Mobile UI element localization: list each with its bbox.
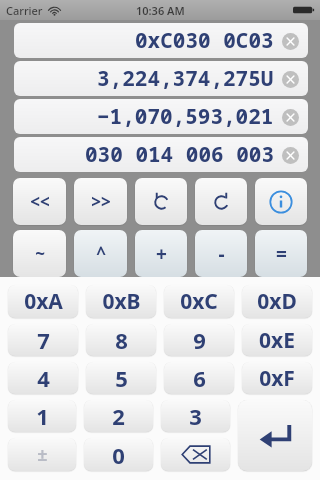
staticText: ± (37, 442, 48, 467)
button[interactable]: = (255, 230, 307, 277)
button[interactable]: Clear field (278, 67, 302, 91)
staticText: + (156, 241, 167, 267)
staticText: 0xE (259, 326, 295, 355)
button[interactable]: 9 (164, 324, 234, 356)
staticText: 7 (37, 325, 50, 355)
button[interactable]: 5 (86, 362, 156, 394)
button[interactable]: 0 (84, 438, 153, 471)
button[interactable]: 3,224,374,275U (14, 61, 308, 96)
button[interactable]: ± (8, 438, 76, 471)
staticText: << (30, 190, 50, 213)
button[interactable]: Backspace (161, 438, 230, 471)
staticText: 3,224,374,275U (97, 64, 274, 93)
staticText: >> (91, 190, 111, 213)
button[interactable]: 0xD (242, 285, 312, 318)
button[interactable]: ^ (74, 230, 127, 277)
staticText: - (218, 241, 225, 267)
button[interactable]: 0xC (164, 285, 234, 318)
staticText: 2 (112, 401, 125, 431)
button[interactable]: 6 (164, 362, 234, 394)
button[interactable]: >> (74, 178, 127, 225)
button[interactable]: 2 (84, 400, 153, 432)
staticText: = (276, 241, 287, 267)
staticText: 0xC (180, 287, 218, 316)
staticText: 9 (193, 325, 206, 355)
button[interactable]: Undo (135, 178, 187, 225)
staticText: 6 (193, 363, 206, 393)
staticText: 1 (36, 401, 49, 431)
button[interactable]: 8 (86, 324, 156, 356)
staticText: 8 (115, 325, 128, 355)
staticText: 0xC030 0C03 (135, 26, 274, 55)
staticText: ^ (96, 242, 106, 265)
staticText: ~ (35, 242, 45, 265)
button[interactable]: 0xE (242, 324, 312, 356)
staticText: 5 (115, 363, 128, 393)
button[interactable]: Clear field (278, 105, 302, 129)
button[interactable]: Clear field (278, 143, 302, 167)
button[interactable]: ~ (13, 230, 66, 277)
staticText: 0xB (102, 287, 141, 316)
button[interactable]: 0xC030 0C03 (14, 23, 308, 58)
button[interactable]: + (135, 230, 187, 277)
button[interactable]: Enter (238, 400, 312, 471)
button[interactable]: 3 (161, 400, 230, 432)
staticText: 030 014 006 003 (85, 140, 274, 169)
button[interactable]: 0xF (242, 362, 312, 394)
button[interactable]: << (13, 178, 66, 225)
button[interactable]: 030 014 006 003 (14, 137, 308, 172)
button[interactable]: 0xB (86, 285, 156, 318)
staticText: 3 (189, 401, 202, 431)
staticText: 0xD (257, 287, 297, 316)
staticText: 4 (37, 363, 50, 393)
button[interactable]: Clear field (278, 29, 302, 53)
staticText: −1,070,593,021 (97, 102, 274, 131)
button[interactable]: - (195, 230, 247, 277)
button[interactable]: 4 (8, 362, 78, 394)
button[interactable]: 0xA (8, 285, 78, 318)
staticText: 10:36 AM (136, 3, 185, 18)
button[interactable]: Redo (195, 178, 247, 225)
button[interactable]: Info (255, 178, 307, 225)
button[interactable]: −1,070,593,021 (14, 99, 308, 134)
button[interactable]: 7 (8, 324, 78, 356)
staticText: 0 (112, 440, 125, 470)
staticText: 0xF (259, 364, 295, 393)
staticText: 0xA (24, 287, 63, 316)
button[interactable]: 1 (8, 400, 76, 432)
staticText: Carrier (6, 3, 43, 18)
